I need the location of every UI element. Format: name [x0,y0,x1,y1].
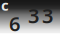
staticText: 3 [42,2,53,29]
staticText: c [1,0,9,15]
staticText: 6 [9,10,20,35]
staticText: 3 [28,2,39,29]
